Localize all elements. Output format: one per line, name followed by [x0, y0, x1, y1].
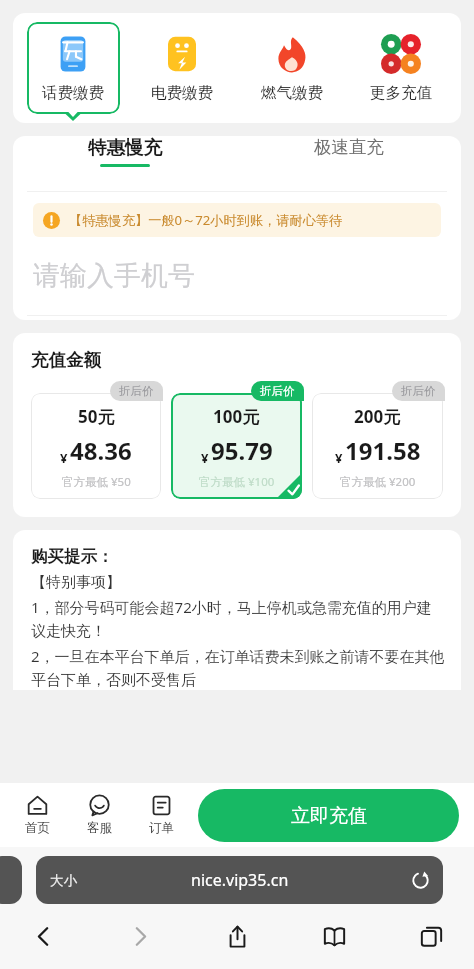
staticText: ¥ — [335, 449, 343, 467]
staticText: 官方最低 ¥200 — [340, 474, 416, 490]
staticText: 100元 — [213, 405, 260, 428]
staticText: 折后价 — [119, 384, 154, 398]
button[interactable]: 首页 — [6, 791, 68, 840]
button[interactable]: 燃气缴费 — [255, 28, 329, 109]
button[interactable]: nice.vip35.cn — [36, 856, 443, 904]
button[interactable]: 订单 — [130, 791, 192, 840]
staticText: 客服 — [87, 820, 112, 836]
staticText: nice.vip35.cn — [191, 869, 289, 891]
button[interactable]: 请输入手机号 — [13, 237, 461, 315]
button[interactable]: 话费缴费 — [36, 28, 110, 109]
staticText: 特惠慢充 — [88, 136, 162, 159]
button[interactable]: 电费缴费 — [145, 28, 219, 109]
staticText: 大小 — [50, 872, 77, 889]
staticText: 191.58 — [345, 434, 421, 467]
staticText: 95.79 — [211, 434, 273, 467]
staticText: 官方最低 ¥50 — [62, 474, 131, 490]
staticText: ¥ — [201, 449, 209, 467]
staticText: 订单 — [149, 820, 174, 836]
button[interactable]: 极速直充 — [237, 136, 461, 166]
button[interactable]: 客服 — [68, 791, 130, 840]
staticText: 购买提示： — [31, 546, 114, 567]
staticText: 充值金额 — [31, 349, 101, 371]
staticText: 50元 — [78, 405, 115, 428]
staticText: 话费缴费 — [42, 83, 104, 103]
staticText: 折后价 — [260, 384, 295, 398]
button[interactable]: 50元 — [31, 393, 161, 499]
staticText: 折后价 — [401, 384, 436, 398]
staticText: 【特惠慢充】一般0～72小时到账，请耐心等待 — [69, 211, 343, 229]
staticText: 首页 — [25, 820, 50, 836]
staticText: 48.36 — [70, 434, 132, 467]
button[interactable]: Bookmarks — [311, 916, 357, 956]
button[interactable]: 特惠慢充 — [13, 136, 237, 167]
button[interactable]: Tabs — [408, 916, 454, 956]
button[interactable]: 100元 — [171, 393, 302, 499]
other: Reload — [411, 871, 430, 890]
staticText: 2，一旦在本平台下单后，在订单话费未到账之前请不要在其他平台下单，否则不受售后 — [31, 646, 445, 690]
staticText: 更多充值 — [370, 83, 432, 103]
button[interactable]: Back — [20, 916, 66, 956]
staticText: ¥ — [60, 449, 68, 467]
staticText: 立即充值 — [291, 804, 367, 828]
button[interactable]: 更多充值 — [364, 28, 438, 109]
button[interactable]: Forward — [117, 916, 163, 956]
staticText: 极速直充 — [314, 136, 384, 158]
staticText: 请输入手机号 — [33, 259, 195, 293]
staticText: 200元 — [354, 405, 401, 428]
staticText: 【特别事项】 — [31, 573, 121, 592]
button[interactable]: 立即充值 — [198, 789, 459, 842]
staticText: 电费缴费 — [151, 83, 213, 103]
button[interactable]: 200元 — [312, 393, 443, 499]
staticText: 官方最低 ¥100 — [199, 474, 275, 490]
staticText: 燃气缴费 — [261, 83, 323, 103]
staticText: 1，部分号码可能会超72小时，马上停机或急需充值的用户建议走快充！ — [31, 597, 445, 641]
button[interactable]: Share — [214, 916, 260, 956]
